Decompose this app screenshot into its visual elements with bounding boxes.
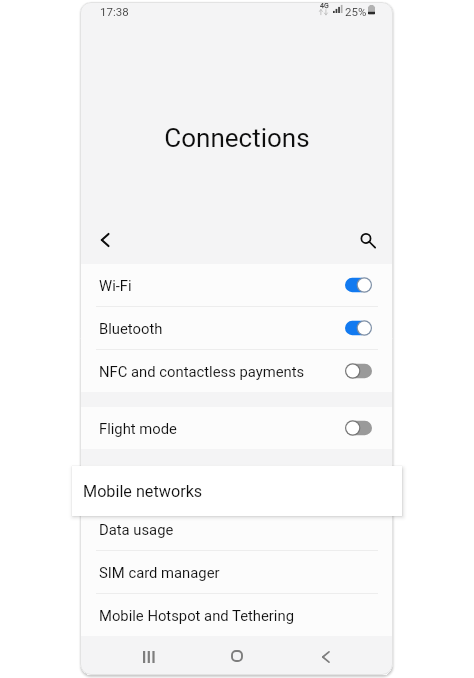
staticText: Mobile networks bbox=[83, 482, 203, 501]
staticText: SIM card manager bbox=[99, 564, 220, 581]
staticText: NFC and contactless payments bbox=[99, 363, 305, 380]
button[interactable]: Home bbox=[214, 636, 260, 675]
button[interactable]: Bluetooth bbox=[80, 307, 393, 349]
staticText: Connections bbox=[164, 123, 310, 153]
button[interactable]: Wi-Fi bbox=[80, 264, 393, 306]
button[interactable]: Mobile Hotspot and Tethering bbox=[80, 594, 393, 636]
staticText: Flight mode bbox=[99, 420, 177, 437]
staticText: Mobile Hotspot and Tethering bbox=[99, 607, 294, 624]
staticText: 4G bbox=[320, 2, 329, 10]
button[interactable]: Mobile networks bbox=[80, 465, 393, 507]
button[interactable]: Data usage bbox=[80, 508, 393, 550]
staticText: Wi-Fi bbox=[99, 277, 132, 294]
button[interactable]: SIM card manager bbox=[80, 551, 393, 593]
button[interactable]: Search bbox=[350, 223, 384, 257]
button[interactable]: Flight mode bbox=[80, 407, 393, 449]
staticText: Mobile networks bbox=[99, 478, 208, 495]
staticText: 17:38 bbox=[100, 5, 129, 18]
button[interactable]: Mobile networks bbox=[72, 466, 402, 516]
button[interactable]: Back bbox=[302, 637, 348, 675]
staticText: 25% bbox=[345, 5, 367, 18]
button[interactable]: NFC and contactless payments bbox=[80, 350, 393, 392]
button[interactable]: Back bbox=[88, 223, 122, 257]
button[interactable]: Recents bbox=[126, 637, 172, 675]
staticText: Data usage bbox=[99, 521, 174, 538]
staticText: Bluetooth bbox=[99, 320, 163, 337]
